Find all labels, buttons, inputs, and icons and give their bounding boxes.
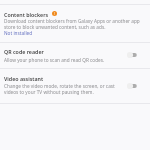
- button[interactable]: Video assistant: [0, 69, 150, 103]
- staticText: QR code reader: [4, 48, 44, 55]
- staticText: Not installed: [4, 30, 33, 36]
- staticText: Video assistant: [4, 75, 44, 82]
- staticText: Content blockers: [4, 11, 49, 18]
- button[interactable]: QR code reader: [0, 43, 150, 68]
- button[interactable]: Video assistant switch, off: [127, 82, 138, 90]
- staticText: videos to your TV without pausing them.: [4, 89, 94, 95]
- staticText: Download content blockers from Galaxy Ap…: [4, 18, 140, 24]
- button[interactable]: QR code reader switch, off: [127, 51, 138, 59]
- button[interactable]: Content blockers: [0, 5, 150, 42]
- staticText: store to block unwanted content, such as…: [4, 24, 106, 30]
- staticText: Change the video mode, rotate the screen…: [4, 83, 115, 89]
- staticText: Allow your phone to scan and read QR cod…: [4, 57, 105, 63]
- other: Warning: [52, 11, 57, 16]
